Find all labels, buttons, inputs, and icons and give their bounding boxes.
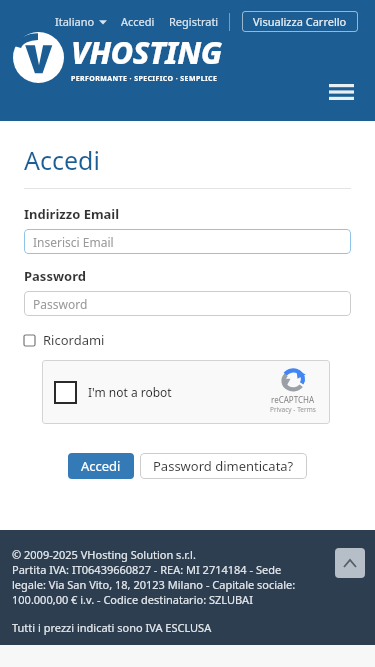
- staticText: PERFORMANTE · SPECIFICO · SEMPLICE: [71, 74, 218, 84]
- button[interactable]: Password: [24, 291, 351, 316]
- button[interactable]: VHOSTING: [13, 31, 222, 84]
- button[interactable]: Registrati: [169, 14, 219, 29]
- button[interactable]: Ricordami: [24, 331, 105, 349]
- staticText: Password: [24, 267, 86, 285]
- staticText: Inserisci Email: [33, 234, 114, 250]
- staticText: Indirizzo Email: [24, 205, 120, 223]
- staticText: Ricordami: [43, 331, 105, 349]
- staticText: Italiano: [55, 14, 95, 29]
- button[interactable]: Accedi: [68, 453, 134, 479]
- staticText: Tutti i prezzi indicati sono IVA ESCLUSA: [12, 620, 212, 635]
- staticText: Accedi: [81, 457, 121, 475]
- staticText: VHOSTING: [71, 31, 222, 73]
- button[interactable]: Inserisci Email: [24, 229, 351, 254]
- button[interactable]: Password dimenticata?: [140, 453, 307, 479]
- button[interactable]: Accedi: [121, 14, 155, 29]
- staticText: reCAPTCHA: [271, 394, 315, 405]
- staticText: Accedi: [24, 143, 100, 177]
- button[interactable]: I'm not a robot: [42, 360, 330, 424]
- staticText: Privacy - Terms: [270, 405, 316, 414]
- button[interactable]: Italiano: [55, 14, 107, 29]
- staticText: © 2009-2025 VHosting Solution s.r.l. Par…: [12, 547, 296, 607]
- staticText: Password dimenticata?: [153, 457, 294, 475]
- staticText: I'm not a robot: [88, 384, 172, 400]
- staticText: Visualizza Carrello: [253, 14, 347, 29]
- staticText: Password: [33, 296, 88, 312]
- button[interactable]: Visualizza Carrello: [242, 11, 358, 32]
- button[interactable]: Scroll to top: [335, 548, 365, 578]
- button[interactable]: Menu: [323, 74, 359, 110]
